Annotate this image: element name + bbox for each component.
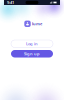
button[interactable]: Sign up	[11, 50, 53, 57]
staticText: 9:41	[7, 0, 14, 5]
staticText: lume	[32, 21, 42, 26]
button[interactable]: Log in	[11, 40, 53, 47]
staticText: Log in	[26, 41, 38, 46]
staticText: Sign up	[24, 51, 40, 56]
